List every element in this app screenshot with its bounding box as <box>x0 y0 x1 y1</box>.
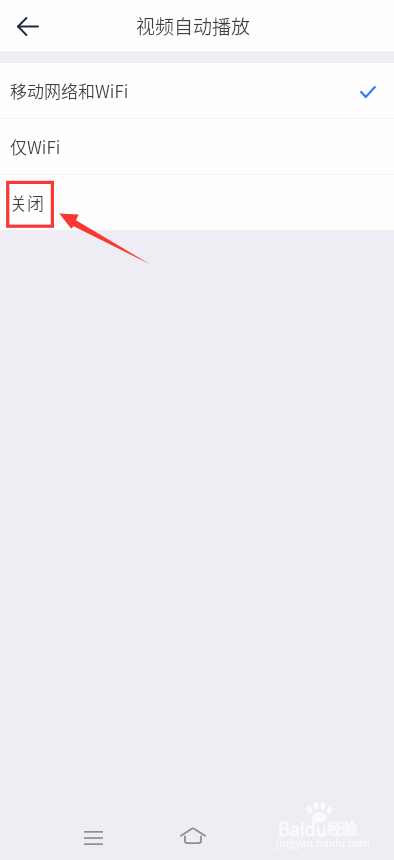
button[interactable]: Recent apps <box>63 808 123 860</box>
staticText: 经验 <box>327 817 358 839</box>
button[interactable]: 移动网络和WiFi <box>0 63 394 118</box>
staticText: jingyan.baidu.com <box>276 834 370 850</box>
button[interactable]: Back <box>6 5 48 47</box>
button[interactable]: 仅WiFi <box>0 119 394 174</box>
staticText: 移动网络和WiFi <box>10 78 129 103</box>
button[interactable]: Home <box>163 808 223 860</box>
staticText: 视频自动播放 <box>136 12 251 40</box>
staticText: 关闭 <box>10 190 44 215</box>
staticText: 仅WiFi <box>10 134 61 159</box>
staticText: Baidu <box>278 815 327 841</box>
button[interactable]: 关闭 <box>0 175 394 230</box>
